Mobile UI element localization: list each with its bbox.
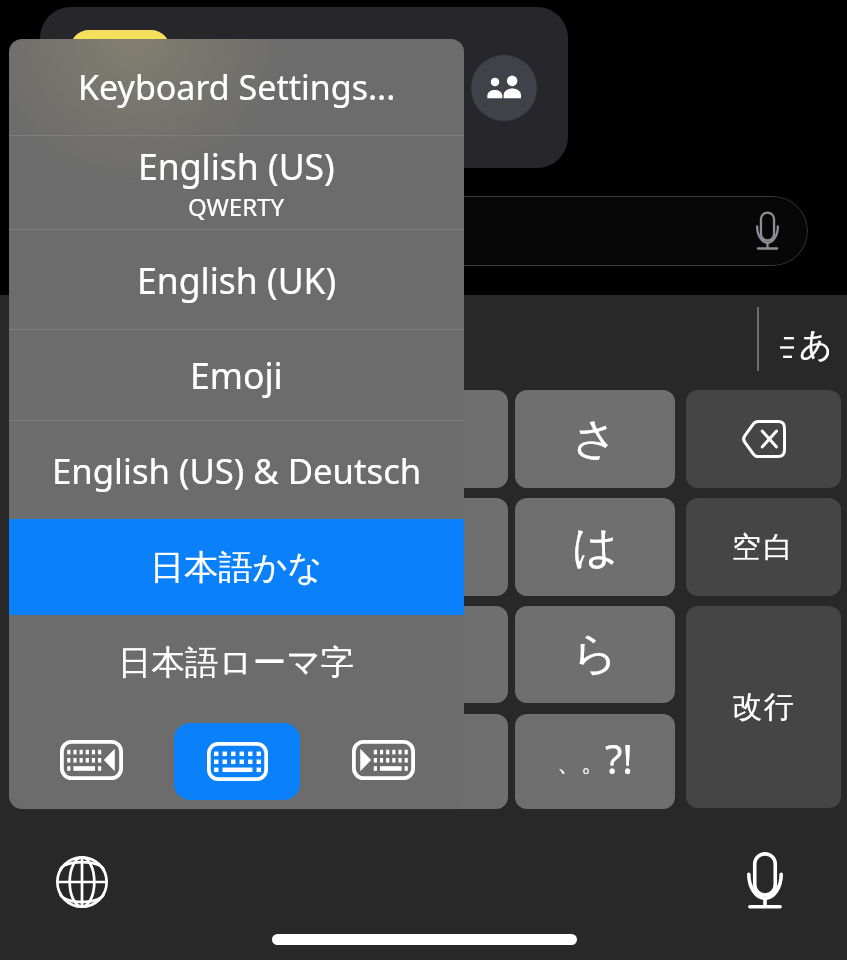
button[interactable] [181, 606, 341, 703]
button[interactable]: 日本語ローマ字 [9, 615, 464, 711]
button[interactable]: Contacts [471, 55, 537, 121]
button[interactable]: Next keyboard [339, 725, 427, 795]
staticText: 空白 [732, 529, 796, 566]
button[interactable] [14, 498, 174, 596]
button[interactable]: Keyboard [174, 723, 300, 800]
button[interactable]: 日本語かな [9, 519, 464, 615]
staticText: ら [572, 626, 619, 683]
staticText: ?! [605, 731, 634, 785]
button[interactable] [181, 498, 341, 596]
staticText: Keyboard Settings... [78, 64, 396, 110]
staticText: 日本語ローマ字 [118, 642, 355, 684]
button[interactable]: は [515, 498, 675, 596]
button[interactable] [348, 606, 508, 703]
button[interactable]: English (UK) [9, 230, 464, 329]
button[interactable] [181, 714, 341, 809]
staticText: 改行 [732, 688, 796, 726]
staticText: 日本語かな [150, 546, 323, 589]
staticText: あ [799, 324, 833, 366]
button[interactable]: Keyboard Settings... [9, 39, 464, 135]
button[interactable]: 改行 [686, 606, 841, 808]
staticText: English (US) [138, 142, 335, 190]
staticText: は [572, 519, 619, 576]
staticText: さ [572, 411, 619, 468]
button[interactable]: さ [515, 390, 675, 488]
staticText: English (US) & Deutsch [52, 447, 422, 494]
button[interactable]: 空白 [686, 498, 841, 596]
staticText: Emoji [190, 351, 283, 399]
button[interactable]: Dictation [736, 846, 794, 916]
button[interactable]: ら [515, 606, 675, 703]
button[interactable]: Delete [686, 390, 841, 488]
button[interactable] [348, 498, 508, 596]
button[interactable] [181, 390, 341, 488]
button[interactable] [14, 714, 174, 809]
button[interactable] [348, 390, 508, 488]
staticText: QWERTY [188, 190, 285, 223]
button[interactable] [14, 390, 174, 488]
staticText: English (UK) [137, 256, 337, 304]
button[interactable]: English (US) & Deutsch [9, 421, 464, 519]
button[interactable]: Emoji [9, 330, 464, 420]
button[interactable] [348, 714, 508, 809]
staticText: 、。 [557, 748, 605, 778]
button[interactable] [14, 606, 174, 703]
button[interactable]: English (US) [9, 136, 464, 229]
button[interactable]: 、。 [515, 714, 675, 809]
button[interactable]: Previous keyboard [47, 725, 135, 795]
button[interactable]: Change keyboard [54, 854, 110, 910]
button[interactable] [250, 196, 808, 266]
